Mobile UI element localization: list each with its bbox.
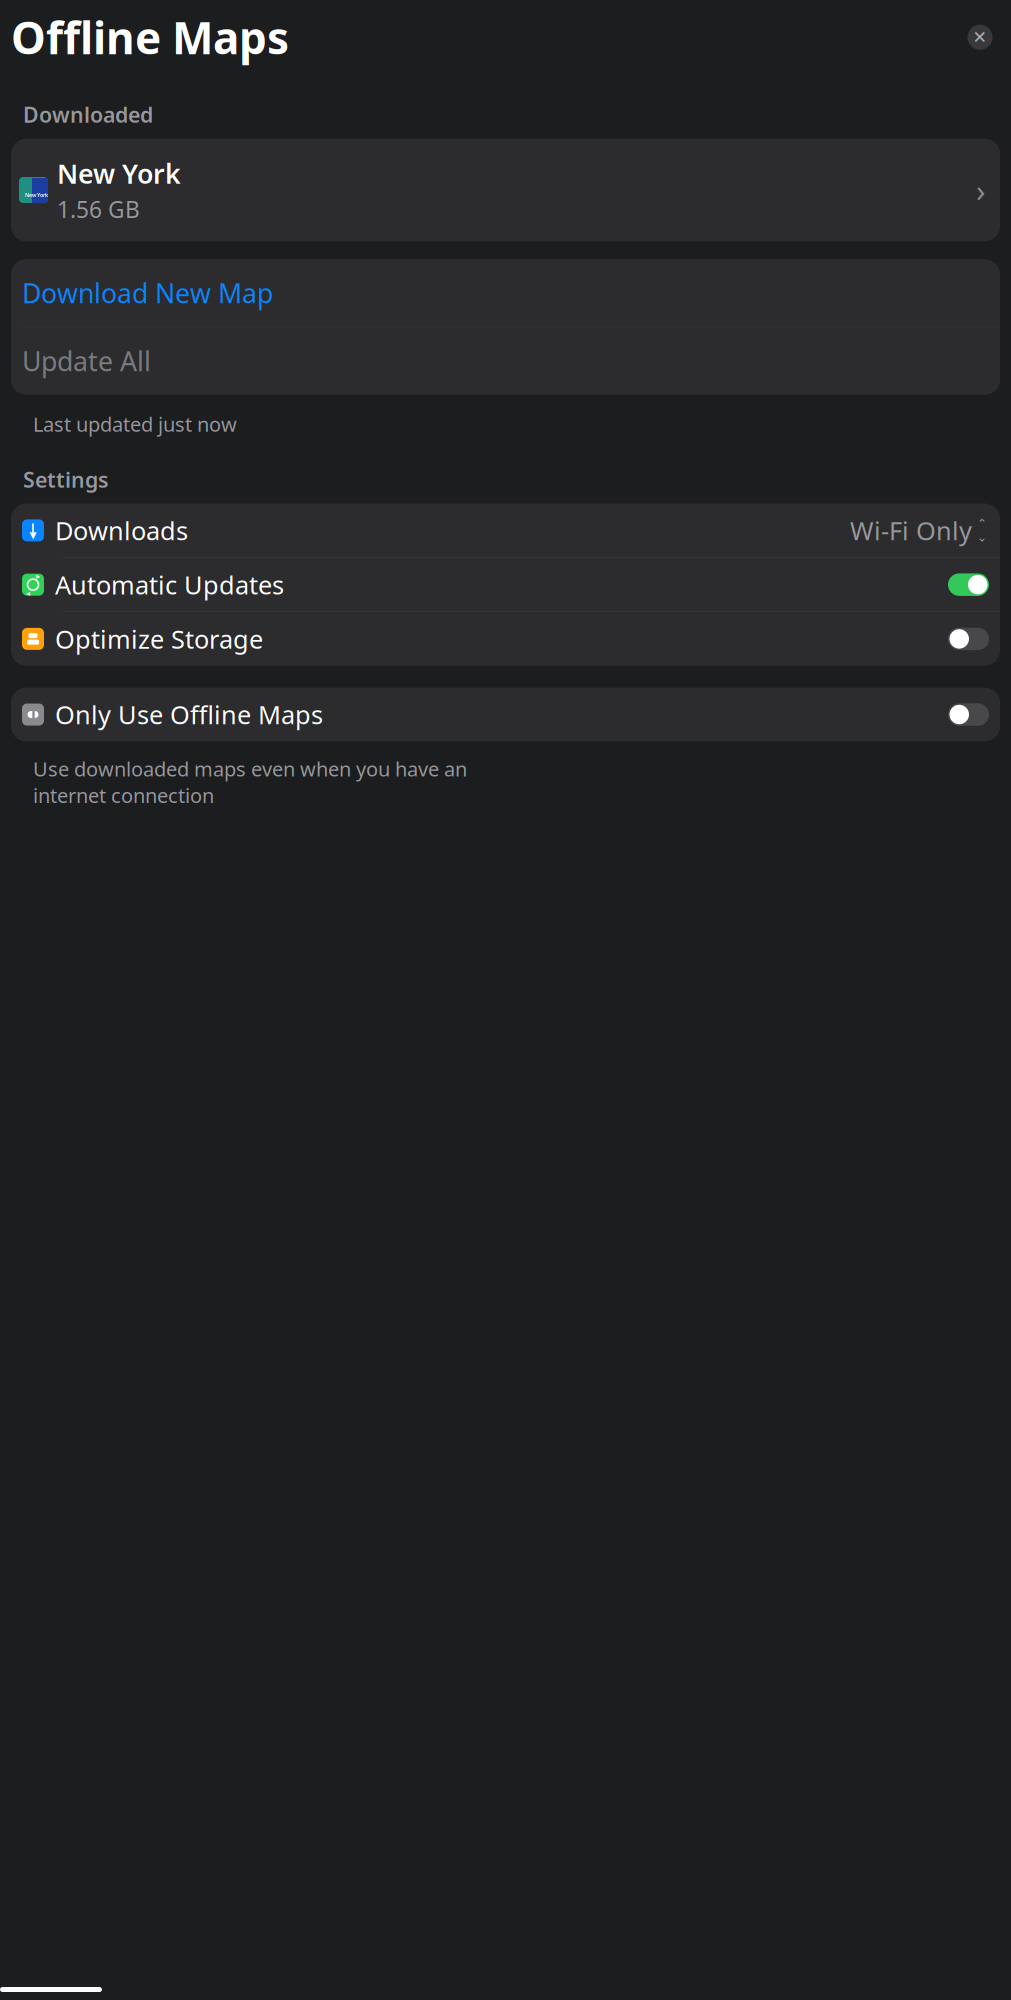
button[interactable]: ▸ <box>11 558 1000 611</box>
staticText: Only Use Offline Maps <box>55 698 323 731</box>
staticText: Wi-Fi Only <box>850 514 972 547</box>
staticText: Downloaded <box>23 100 153 129</box>
staticText: Offline Maps <box>11 8 289 66</box>
staticText: Downloads <box>55 514 188 547</box>
button[interactable]: Only Use Offline Maps <box>11 688 1000 741</box>
button[interactable]: Download New Map <box>11 259 1000 327</box>
staticText: Use downloaded maps even when you have a… <box>33 755 467 808</box>
staticText: 1.56 GB <box>57 194 140 224</box>
staticText: ▸ <box>36 572 40 581</box>
staticText: ✕ <box>972 27 987 47</box>
staticText: ▼ <box>29 530 36 540</box>
button[interactable]: ▼ <box>11 504 1000 557</box>
staticText: Automatic Updates <box>55 568 284 601</box>
staticText: Download New Map <box>22 275 273 311</box>
staticText: ⌃ ⌄ <box>977 517 987 544</box>
button[interactable]: Close <box>965 22 995 52</box>
staticText: Last updated just now <box>33 411 237 437</box>
staticText: Optimize Storage <box>55 622 263 656</box>
staticText: New York <box>57 156 181 191</box>
staticText: Settings <box>23 465 109 494</box>
staticText: ◂ <box>26 589 30 598</box>
button[interactable]: Update All <box>11 327 1000 395</box>
staticText: › <box>976 170 986 210</box>
staticText: Update All <box>22 343 151 379</box>
button[interactable]: New York <box>11 139 1000 241</box>
staticText: New York <box>25 191 48 199</box>
button[interactable]: Optimize Storage <box>11 612 1000 666</box>
